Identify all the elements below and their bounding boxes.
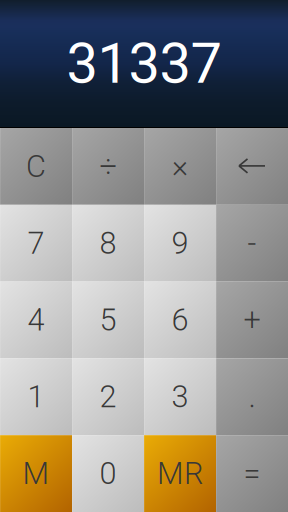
button[interactable]: 0: [72, 435, 144, 512]
staticText: 3: [171, 379, 188, 415]
staticText: -: [247, 225, 256, 261]
button[interactable]: +: [216, 282, 288, 358]
staticText: 0: [99, 456, 116, 491]
staticText: .: [248, 379, 255, 415]
button[interactable]: C: [0, 128, 72, 205]
button[interactable]: 3: [144, 358, 216, 435]
button[interactable]: 9: [144, 205, 216, 282]
button[interactable]: ÷: [72, 128, 144, 205]
staticText: 8: [99, 225, 116, 261]
button[interactable]: 4: [0, 282, 72, 358]
staticText: 4: [27, 302, 44, 338]
button[interactable]: 5: [72, 282, 144, 358]
button[interactable]: Backspace: [216, 128, 288, 205]
button[interactable]: M: [0, 435, 72, 512]
staticText: 7: [27, 225, 44, 261]
button[interactable]: 2: [72, 358, 144, 435]
staticText: 31337: [66, 31, 221, 96]
button[interactable]: -: [216, 205, 288, 282]
staticText: 6: [171, 302, 188, 338]
staticText: ÷: [99, 148, 116, 184]
button[interactable]: 6: [144, 282, 216, 358]
staticText: +: [243, 302, 260, 338]
button[interactable]: 1: [0, 358, 72, 435]
staticText: 1: [27, 379, 44, 415]
button[interactable]: =: [216, 435, 288, 512]
staticText: ×: [172, 148, 188, 184]
staticText: C: [26, 148, 46, 184]
button[interactable]: .: [216, 358, 288, 435]
staticText: 2: [99, 379, 116, 415]
button[interactable]: 8: [72, 205, 144, 282]
staticText: =: [243, 456, 260, 491]
button[interactable]: ×: [144, 128, 216, 205]
staticText: M: [22, 456, 49, 491]
staticText: MR: [157, 456, 203, 491]
button[interactable]: MR: [144, 435, 216, 512]
button[interactable]: 7: [0, 205, 72, 282]
staticText: 9: [171, 225, 188, 261]
staticText: 5: [99, 302, 116, 338]
